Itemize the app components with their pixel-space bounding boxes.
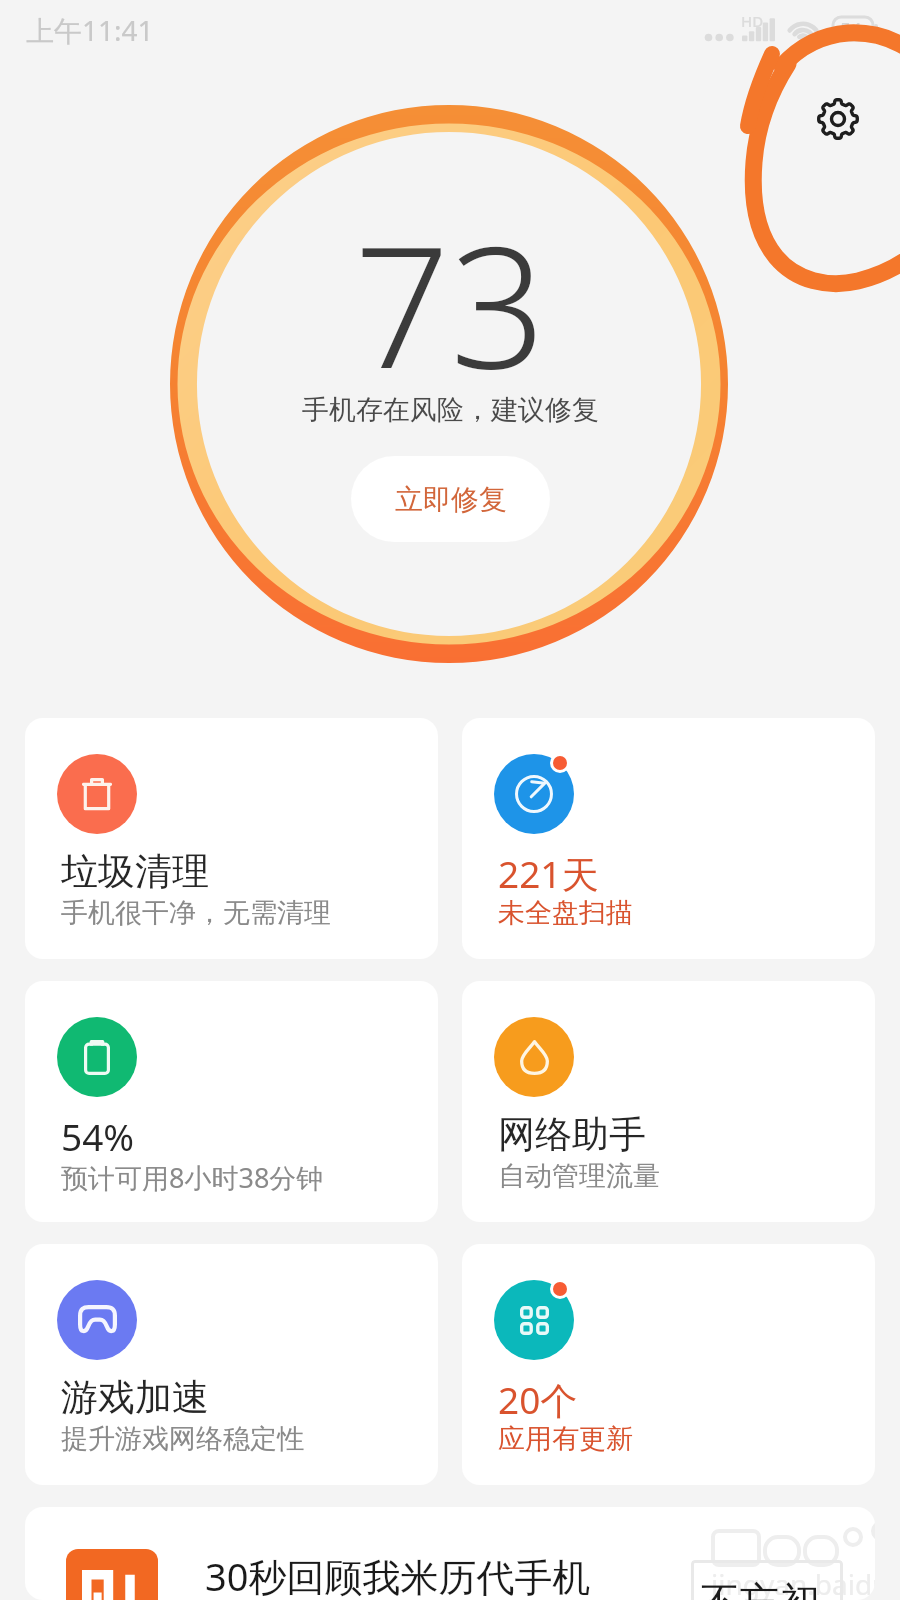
staticText: 30秒回顾我米历代手机 <box>205 1550 591 1600</box>
staticText: 不忘初心 <box>700 1577 843 1600</box>
staticText: 221天 <box>498 848 599 899</box>
staticText: 未全盘扫描 <box>498 896 633 930</box>
button[interactable]: Settings <box>803 84 873 154</box>
button[interactable]: 不忘初心 <box>691 1560 843 1600</box>
button[interactable]: 54% <box>25 981 438 1222</box>
staticText: 手机存在风险，建议修复 <box>302 393 599 427</box>
button[interactable]: 垃圾清理 <box>25 718 438 959</box>
button[interactable]: 游戏加速 <box>25 1244 438 1485</box>
staticText: 立即修复 <box>395 482 507 517</box>
staticText: 游戏加速 <box>61 1374 209 1421</box>
button[interactable]: jingyan.baidu.com <box>25 1507 875 1600</box>
staticText: HD <box>741 11 764 31</box>
staticText: 网络助手 <box>498 1111 646 1158</box>
button[interactable]: 20个 <box>462 1244 875 1485</box>
staticText: 垃圾清理 <box>61 848 209 895</box>
staticText: 上午11:41 <box>26 11 154 49</box>
button[interactable]: 立即修复 <box>351 456 550 542</box>
staticText: 54% <box>61 1111 135 1161</box>
staticText: 手机很干净，无需清理 <box>61 896 331 930</box>
button[interactable]: 221天 <box>462 718 875 959</box>
staticText: 预计可用8小时38分钟 <box>61 1159 324 1196</box>
staticText: 应用有更新 <box>498 1422 633 1456</box>
staticText: 自动管理流量 <box>498 1159 660 1193</box>
staticText: jingyan.baidu.com <box>711 1565 875 1600</box>
staticText: 20个 <box>498 1374 578 1425</box>
staticText: 54 <box>840 17 862 43</box>
staticText: 提升游戏网络稳定性 <box>61 1422 304 1456</box>
staticText: 73 <box>354 188 546 417</box>
button[interactable]: 网络助手 <box>462 981 875 1222</box>
